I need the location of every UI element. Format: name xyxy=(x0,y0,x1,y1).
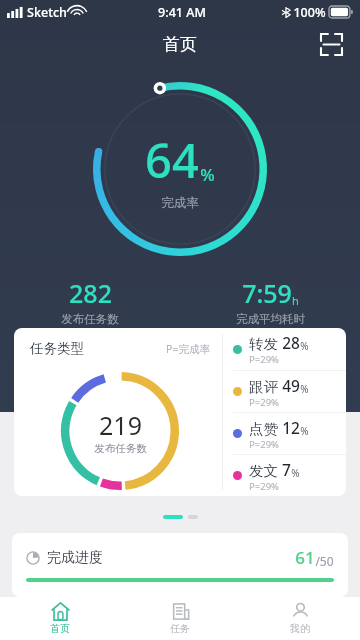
staticText: 点赞 xyxy=(249,420,278,438)
button[interactable]: 完成进度 xyxy=(12,533,348,597)
staticText: 282 xyxy=(69,276,112,310)
staticText: P=29% xyxy=(249,438,279,451)
staticText: 发布任务数 xyxy=(94,442,147,455)
button[interactable]: 发文 xyxy=(233,455,346,496)
staticText: P=29% xyxy=(249,480,279,493)
staticText: 任务 xyxy=(170,622,190,635)
staticText: 任务类型 xyxy=(30,340,84,357)
staticText: 28 xyxy=(282,332,300,353)
button[interactable]: 我的 xyxy=(240,597,360,640)
staticText: 7:59 xyxy=(242,276,292,310)
staticText: 完成平均耗时 xyxy=(236,312,305,326)
button[interactable]: 点赞 xyxy=(233,413,346,454)
staticText: 首页 xyxy=(50,622,70,635)
button[interactable]: Scan QR code xyxy=(314,27,348,61)
staticText: 完成率 xyxy=(161,195,199,211)
staticText: Sketch xyxy=(27,4,67,21)
staticText: 发布任务数 xyxy=(61,312,119,326)
staticText: 64 xyxy=(145,128,199,192)
staticText: 完成进度 xyxy=(47,549,103,567)
staticText: 219 xyxy=(99,408,142,442)
staticText: h xyxy=(292,293,299,308)
staticText: 100% xyxy=(293,4,326,21)
staticText: P=29% xyxy=(249,353,279,366)
staticText: 跟评 xyxy=(249,378,278,396)
staticText: /50 xyxy=(315,553,334,569)
staticText: P=完成率 xyxy=(166,342,210,356)
staticText: 首页 xyxy=(163,34,197,55)
staticText: 发文 xyxy=(249,462,278,480)
staticText: 7 xyxy=(282,459,291,480)
staticText: % xyxy=(200,163,215,186)
staticText: % xyxy=(300,382,309,396)
staticText: % xyxy=(300,339,309,353)
button[interactable]: 任务 xyxy=(120,597,240,640)
staticText: % xyxy=(300,424,309,438)
staticText: 转发 xyxy=(249,335,278,353)
staticText: 49 xyxy=(282,375,300,396)
staticText: 9:41 AM xyxy=(158,4,206,21)
staticText: 61 xyxy=(295,546,315,569)
staticText: 12 xyxy=(282,417,300,438)
staticText: P=29% xyxy=(249,396,279,409)
button[interactable]: 转发 xyxy=(233,328,346,370)
staticText: 我的 xyxy=(290,622,310,635)
button[interactable]: 首页 xyxy=(0,597,120,640)
button[interactable]: 跟评 xyxy=(233,371,346,412)
staticText: % xyxy=(291,466,300,480)
